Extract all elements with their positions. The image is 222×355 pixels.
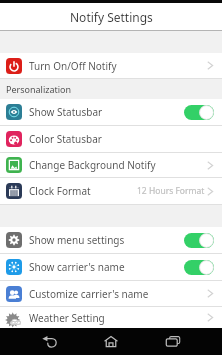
button[interactable]: Turn On/Off Notify: [0, 53, 222, 78]
staticText: Weather Setting: [29, 311, 105, 325]
button[interactable]: Show menu settings: [0, 227, 222, 253]
button[interactable]: Toggle: [184, 260, 214, 275]
button[interactable]: Back: [38, 328, 62, 355]
staticText: Customize carrier's name: [29, 287, 149, 301]
button[interactable]: Clock Format: [0, 178, 222, 204]
staticText: Show carrier's name: [29, 260, 125, 274]
staticText: Turn On/Off Notify: [29, 59, 117, 73]
button[interactable]: Home: [99, 328, 123, 355]
button[interactable]: Recent apps: [161, 328, 185, 355]
staticText: Show menu settings: [29, 233, 125, 247]
staticText: Show Statusbar: [29, 105, 103, 119]
button[interactable]: Customize carrier's name: [0, 281, 222, 306]
button[interactable]: Show Statusbar: [0, 99, 222, 125]
button[interactable]: Toggle: [184, 105, 214, 120]
staticText: 12 Hours Format: [137, 185, 205, 197]
staticText: Notify Settings: [70, 9, 153, 25]
button[interactable]: Weather Setting: [0, 307, 222, 328]
staticText: Change Background Notify: [29, 158, 156, 172]
button[interactable]: Toggle: [184, 233, 214, 248]
staticText: Clock Format: [29, 184, 91, 198]
staticText: Color Statusbar: [29, 132, 102, 146]
button[interactable]: Color Statusbar: [0, 126, 222, 152]
button[interactable]: Change Background Notify: [0, 153, 222, 177]
button[interactable]: Show carrier's name: [0, 254, 222, 280]
staticText: Personalization: [6, 83, 72, 95]
